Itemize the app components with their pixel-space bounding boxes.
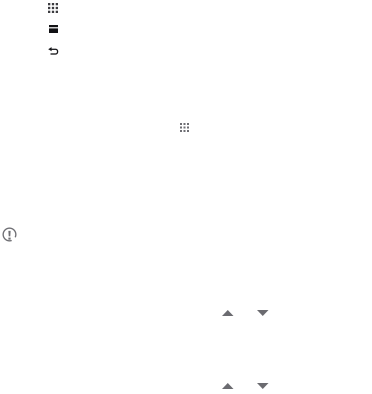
button[interactable]: Sort ascending <box>222 383 257 394</box>
button[interactable]: Sort descending <box>257 310 292 332</box>
button[interactable]: Grid view <box>48 3 78 25</box>
button[interactable]: Sort ascending <box>222 310 257 332</box>
button[interactable]: Sort descending <box>257 383 292 394</box>
button[interactable]: Undo <box>48 47 78 69</box>
button[interactable]: Table view <box>49 25 79 47</box>
